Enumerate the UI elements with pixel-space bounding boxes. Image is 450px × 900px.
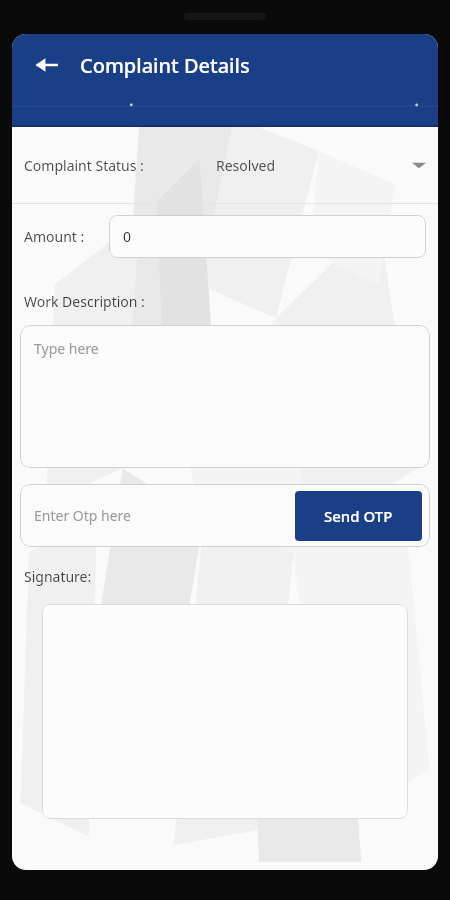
button[interactable]: Complaint Status : [12, 127, 438, 203]
button[interactable]: 0 [109, 215, 426, 258]
staticText: Resolved [216, 156, 276, 175]
button[interactable]: Type here [20, 325, 430, 468]
staticText: Send OTP [324, 506, 393, 526]
staticText: Complaint Status : [24, 156, 144, 175]
staticText: Enter Otp here [34, 506, 131, 525]
button[interactable]: Send OTP [295, 491, 422, 541]
staticText: Amount : [24, 227, 85, 246]
staticText: Type here [34, 339, 99, 358]
staticText: 0 [123, 227, 132, 246]
button[interactable]: Enter Otp here [20, 484, 430, 547]
button[interactable]: Back [30, 48, 64, 82]
staticText: Signature: [24, 567, 92, 586]
staticText: Complaint Details [80, 52, 250, 79]
staticText: Work Description : [24, 292, 145, 311]
button[interactable]: Signature pad [42, 604, 408, 819]
